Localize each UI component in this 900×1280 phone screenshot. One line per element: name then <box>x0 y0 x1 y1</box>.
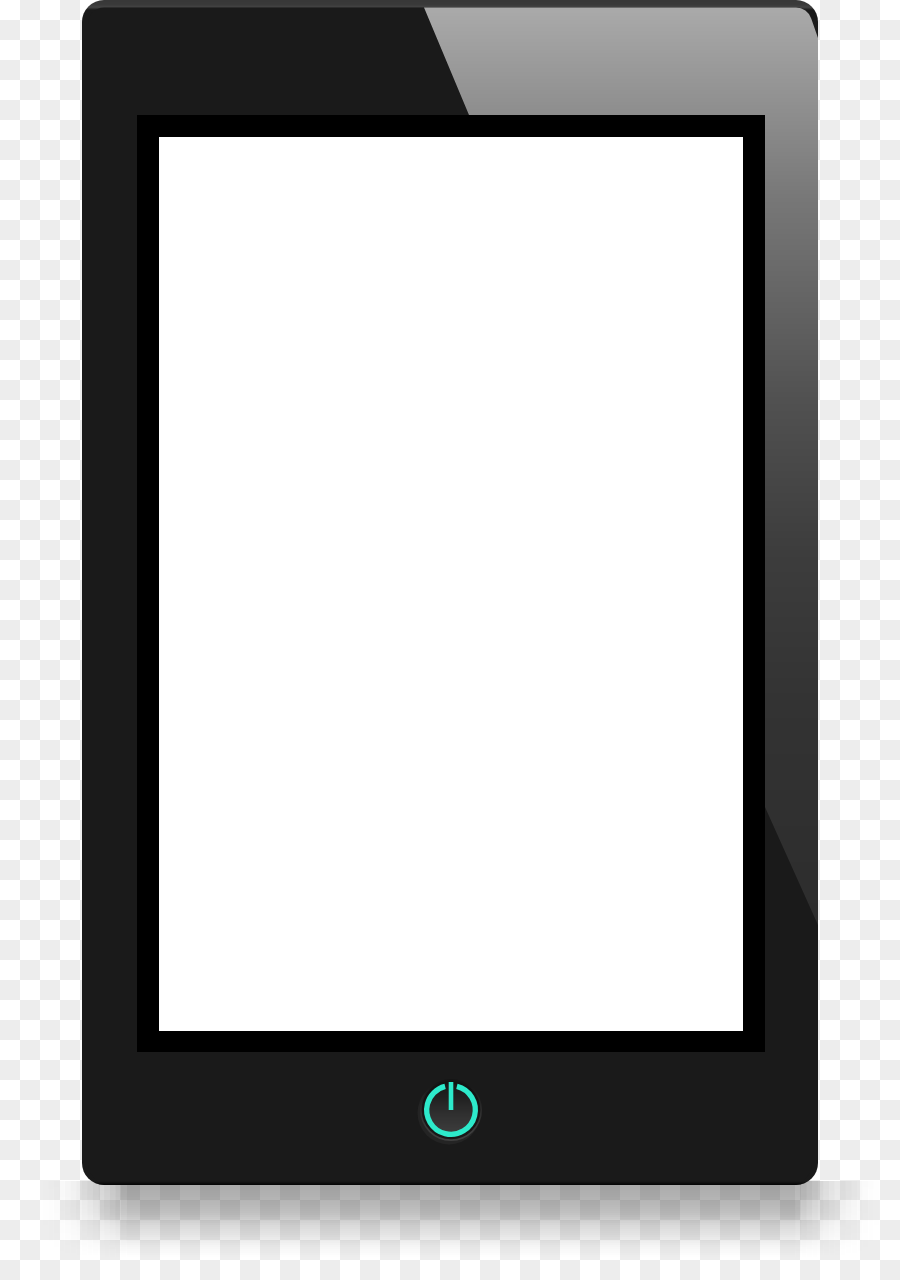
button[interactable]: Power <box>417 1076 485 1144</box>
